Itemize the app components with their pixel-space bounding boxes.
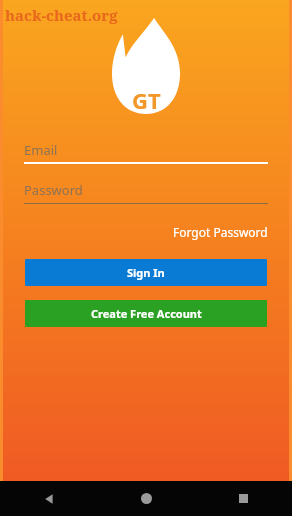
button[interactable]: Create Free Account: [25, 300, 267, 327]
button[interactable]: Password: [24, 180, 268, 204]
staticText: Create Free Account: [91, 306, 202, 321]
staticText: GT: [132, 85, 161, 115]
button[interactable]: Recent apps: [195, 481, 292, 516]
button[interactable]: Sign In: [25, 259, 267, 286]
button[interactable]: Forgot Password: [160, 222, 268, 242]
button[interactable]: Email: [24, 140, 268, 164]
button[interactable]: Back: [0, 481, 97, 516]
staticText: Password: [24, 181, 83, 199]
staticText: Sign In: [127, 265, 165, 280]
staticText: Forgot Password: [173, 224, 268, 240]
staticText: Email: [24, 141, 58, 159]
staticText: hack-cheat.org: [5, 5, 118, 25]
button[interactable]: Home: [97, 481, 195, 516]
